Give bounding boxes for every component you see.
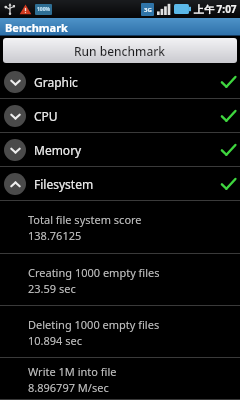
button[interactable]: Memory bbox=[0, 133, 240, 167]
staticText: CPU bbox=[34, 108, 58, 124]
staticText: 10.894 sec bbox=[28, 333, 83, 348]
button[interactable]: Graphic bbox=[0, 65, 240, 99]
staticText: 3G bbox=[144, 6, 152, 14]
button[interactable]: CPU bbox=[0, 99, 240, 133]
staticText: Filesystem bbox=[34, 176, 94, 192]
staticText: Benchmark bbox=[5, 20, 68, 35]
button[interactable]: Deleting 1000 empty files bbox=[0, 306, 240, 358]
staticText: 138.76125 bbox=[28, 228, 82, 243]
button[interactable]: Write 1M into file bbox=[0, 358, 240, 400]
staticText: Write 1M into file bbox=[28, 364, 117, 379]
staticText: 23.59 sec bbox=[28, 281, 76, 296]
staticText: Memory bbox=[34, 142, 82, 158]
button[interactable]: Filesystem bbox=[0, 167, 240, 201]
staticText: 100% bbox=[37, 6, 51, 13]
button[interactable]: Creating 1000 empty files bbox=[0, 254, 240, 306]
button[interactable]: Total file system score bbox=[0, 201, 240, 254]
staticText: Total file system score bbox=[28, 212, 142, 227]
button[interactable]: Run benchmark bbox=[3, 38, 237, 63]
staticText: Graphic bbox=[34, 74, 78, 90]
staticText: 上午 7:07 bbox=[194, 2, 237, 16]
staticText: Creating 1000 empty files bbox=[28, 265, 160, 280]
staticText: Deleting 1000 empty files bbox=[28, 317, 160, 332]
staticText: 8.896797 M/sec bbox=[28, 380, 109, 395]
staticText: Run benchmark bbox=[74, 43, 166, 59]
